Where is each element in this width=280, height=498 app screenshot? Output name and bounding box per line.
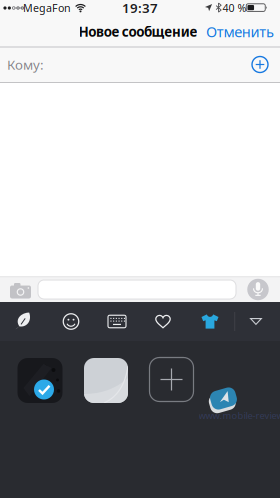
button[interactable]: Смайлики (63, 314, 79, 329)
button[interactable]: Стикер (209, 387, 237, 410)
button[interactable]: Клавиатура (108, 315, 126, 328)
button[interactable]: Текстовое поле сообщения (38, 280, 236, 299)
staticText: Кому: (7, 56, 44, 73)
button[interactable]: Стикерпак (84, 358, 128, 403)
staticText: MegaFon (23, 1, 71, 15)
staticText: 40 % (222, 1, 246, 15)
staticText: Отменить (206, 22, 274, 41)
button[interactable]: Добавить контакт (251, 56, 268, 73)
staticText: 19:37 (122, 0, 158, 17)
button[interactable]: Недавние (15, 312, 32, 330)
button[interactable]: Приложение (17, 358, 62, 403)
button[interactable]: Отменить (206, 22, 274, 41)
staticText: Новое сообщение (79, 23, 197, 40)
staticText: www.mobile-review.com (198, 409, 280, 422)
button[interactable]: Свернуть (250, 318, 262, 325)
button[interactable]: Диктовка (247, 279, 269, 300)
button[interactable]: Добавить приложение (149, 357, 193, 401)
button[interactable]: Стикеры (201, 314, 219, 329)
button[interactable]: Digital Touch (155, 314, 171, 328)
button[interactable]: Камера (10, 282, 31, 297)
